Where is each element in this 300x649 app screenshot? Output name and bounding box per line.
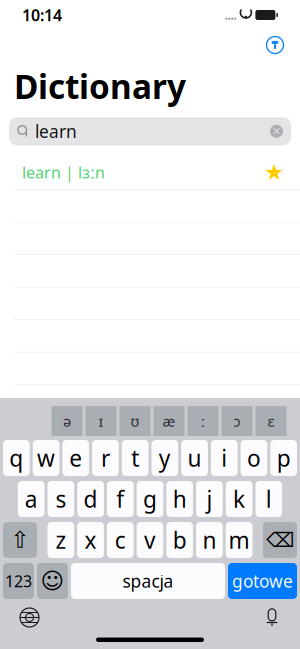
button[interactable]: l [255, 481, 282, 517]
button[interactable]: learn [9, 117, 291, 145]
staticText: Dictionary [14, 64, 186, 108]
button[interactable]: Pin [260, 30, 290, 60]
staticText: 10:14 [22, 4, 62, 26]
button[interactable]: g [137, 481, 163, 517]
button[interactable]: k [226, 481, 252, 517]
staticText: i [221, 443, 227, 473]
button[interactable]: e [62, 440, 89, 476]
button[interactable]: h [166, 481, 193, 517]
staticText: ʊ [130, 411, 139, 431]
staticText: d [84, 484, 98, 514]
button[interactable]: j [196, 481, 223, 517]
button[interactable]: spacja [71, 563, 225, 599]
button[interactable]: ɛ [255, 406, 286, 436]
staticText: ː [200, 411, 205, 431]
staticText: o [247, 443, 261, 473]
staticText: .... [224, 7, 236, 23]
button[interactable]: ə [51, 406, 82, 436]
button[interactable]: y [151, 440, 178, 476]
staticText: learn | lɜːn [22, 162, 105, 183]
staticText: spacja [122, 569, 173, 592]
button[interactable]: t [122, 440, 148, 476]
button[interactable]: f [107, 481, 134, 517]
staticText: e [69, 443, 82, 473]
staticText: b [173, 525, 187, 555]
staticText: z [55, 525, 66, 555]
staticText: ☺ [40, 568, 64, 594]
staticText: ə [63, 411, 71, 431]
button[interactable]: b [166, 522, 193, 558]
button[interactable]: u [181, 440, 208, 476]
staticText: x [85, 525, 97, 555]
staticText: y [159, 443, 171, 473]
staticText: r [101, 443, 110, 473]
button[interactable]: ɔ [221, 406, 252, 436]
button[interactable]: z [48, 522, 74, 558]
button[interactable]: Dictate [263, 607, 281, 628]
staticText: s [55, 484, 66, 514]
staticText: m [229, 525, 250, 555]
button[interactable]: q [3, 440, 30, 476]
staticText: ✕ [272, 125, 281, 137]
staticText: n [202, 525, 216, 555]
staticText: a [25, 484, 38, 514]
button[interactable]: v [137, 522, 163, 558]
staticText: ɔ [233, 411, 240, 431]
staticText: p [277, 443, 291, 473]
button[interactable]: Emoji [37, 563, 68, 599]
button[interactable]: Delete [263, 522, 297, 558]
staticText: ɪ [98, 411, 103, 431]
staticText: f [116, 484, 124, 514]
button[interactable]: ː [187, 406, 218, 436]
staticText: k [233, 484, 245, 514]
staticText: g [143, 484, 157, 514]
staticText: v [144, 525, 156, 555]
button[interactable]: m [226, 522, 252, 558]
staticText: learn [35, 120, 77, 143]
button[interactable]: s [48, 481, 74, 517]
staticText: ⇧ [10, 527, 29, 553]
button[interactable]: 123 [3, 563, 34, 599]
staticText: u [188, 443, 202, 473]
staticText: j [206, 484, 212, 514]
staticText: ɛ [267, 411, 274, 431]
staticText: ⌫ [266, 529, 294, 551]
staticText: gotowe [232, 569, 293, 592]
staticText: l [266, 484, 272, 514]
button[interactable]: n [196, 522, 223, 558]
staticText: æ [162, 411, 175, 431]
button[interactable]: gotowe [228, 563, 297, 599]
button[interactable]: learn | lɜːn [0, 155, 300, 189]
button[interactable]: d [77, 481, 104, 517]
staticText: q [9, 443, 23, 473]
staticText: h [173, 484, 187, 514]
button[interactable]: w [33, 440, 59, 476]
staticText: ★ [264, 159, 284, 185]
button[interactable]: Shift [3, 522, 37, 558]
button[interactable]: æ [153, 406, 184, 436]
button[interactable]: p [270, 440, 297, 476]
staticText: w [37, 443, 55, 473]
button[interactable]: r [92, 440, 119, 476]
button[interactable]: ɪ [85, 406, 116, 436]
staticText: 123 [5, 570, 32, 592]
staticText: t [131, 443, 139, 473]
button[interactable]: a [18, 481, 45, 517]
button[interactable]: o [241, 440, 267, 476]
button[interactable]: i [211, 440, 238, 476]
button[interactable]: Next keyboard [19, 607, 40, 628]
button[interactable]: ʊ [119, 406, 150, 436]
button[interactable]: c [107, 522, 134, 558]
staticText: c [115, 525, 126, 555]
button[interactable]: x [77, 522, 104, 558]
